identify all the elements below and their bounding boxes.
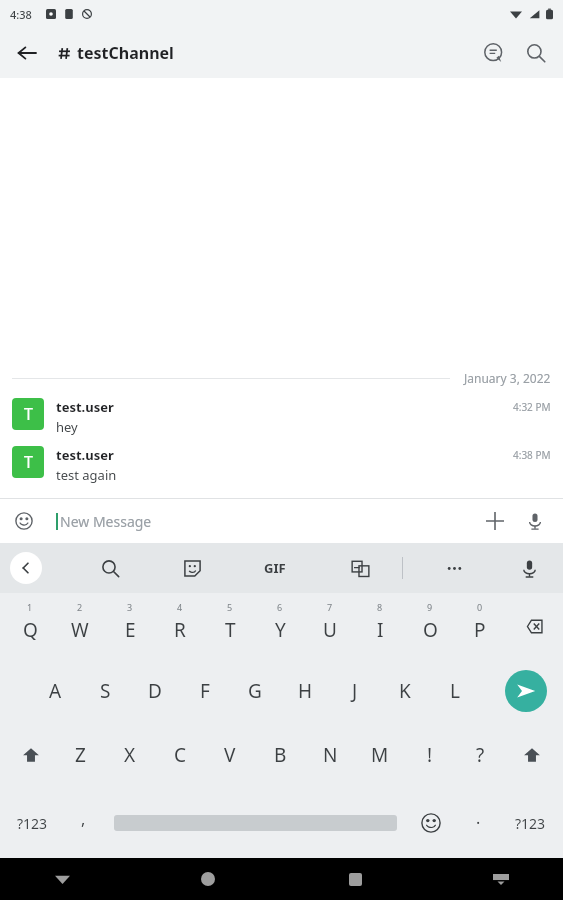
- button[interactable]: ?123: [503, 801, 557, 845]
- button[interactable]: Emoji: [409, 801, 453, 845]
- button[interactable]: 5: [207, 593, 253, 659]
- staticText: U: [323, 617, 337, 643]
- staticText: Z: [75, 742, 86, 768]
- staticText: 4:32 PM: [513, 400, 551, 414]
- staticText: S: [100, 678, 111, 704]
- staticText: 0: [477, 601, 483, 613]
- button[interactable]: ?123: [6, 801, 58, 845]
- button[interactable]: ,: [62, 801, 104, 845]
- button[interactable]: Voice input: [509, 548, 549, 588]
- button[interactable]: [114, 801, 397, 845]
- button[interactable]: 1: [7, 593, 53, 659]
- button[interactable]: Send: [505, 670, 547, 712]
- button[interactable]: A: [32, 659, 78, 723]
- button[interactable]: Back: [6, 32, 48, 74]
- staticText: 3: [127, 601, 133, 613]
- button[interactable]: D: [132, 659, 178, 723]
- button[interactable]: Search GIFs: [90, 548, 130, 588]
- staticText: New Message: [60, 512, 152, 531]
- button[interactable]: 6: [257, 593, 303, 659]
- staticText: T: [24, 451, 33, 473]
- button[interactable]: F: [182, 659, 228, 723]
- staticText: K: [399, 678, 411, 704]
- staticText: testChannel: [77, 42, 174, 64]
- staticText: January 3, 2022: [464, 370, 551, 386]
- staticText: X: [124, 742, 136, 768]
- staticText: N: [323, 742, 338, 768]
- button[interactable]: !: [407, 723, 453, 787]
- button[interactable]: Back: [40, 858, 84, 900]
- button[interactable]: Emoji: [6, 503, 42, 539]
- button[interactable]: Recents: [333, 858, 377, 900]
- button[interactable]: 9: [407, 593, 453, 659]
- button[interactable]: Shift: [509, 732, 555, 778]
- staticText: E: [125, 617, 136, 643]
- button[interactable]: C: [157, 723, 203, 787]
- button[interactable]: M: [357, 723, 403, 787]
- staticText: 9: [427, 601, 433, 613]
- staticText: 8: [377, 601, 383, 613]
- staticText: hey: [56, 418, 78, 436]
- button[interactable]: Voice message: [515, 501, 555, 541]
- button[interactable]: 4: [157, 593, 203, 659]
- staticText: F: [200, 678, 210, 704]
- button[interactable]: Shift: [8, 732, 54, 778]
- button[interactable]: X: [107, 723, 153, 787]
- button[interactable]: Home: [186, 858, 230, 900]
- button[interactable]: 7: [307, 593, 353, 659]
- button[interactable]: Stickers: [172, 548, 212, 588]
- button[interactable]: .: [459, 804, 497, 842]
- button[interactable]: B: [257, 723, 303, 787]
- button[interactable]: Collapse toolbar: [10, 552, 42, 584]
- button[interactable]: ?: [457, 723, 503, 787]
- button[interactable]: 0: [457, 593, 503, 659]
- button[interactable]: 2: [57, 593, 103, 659]
- button[interactable]: K: [382, 659, 428, 723]
- staticText: 4:38 PM: [513, 448, 551, 462]
- staticText: P: [474, 617, 486, 643]
- button[interactable]: H: [282, 659, 328, 723]
- button[interactable]: Search: [515, 32, 557, 74]
- staticText: !: [427, 742, 433, 768]
- button[interactable]: T: [0, 440, 563, 488]
- staticText: D: [148, 678, 162, 704]
- staticText: 5: [227, 601, 233, 613]
- staticText: test.user: [56, 446, 114, 464]
- staticText: ,: [81, 808, 86, 830]
- button[interactable]: G: [232, 659, 278, 723]
- button[interactable]: 3: [107, 593, 153, 659]
- button[interactable]: J: [332, 659, 378, 723]
- staticText: 4:38: [10, 7, 32, 22]
- staticText: B: [274, 742, 287, 768]
- staticText: C: [174, 742, 187, 768]
- staticText: 7: [327, 601, 333, 613]
- staticText: I: [377, 617, 384, 643]
- staticText: Y: [275, 617, 286, 643]
- button[interactable]: Translate: [340, 548, 380, 588]
- button[interactable]: 8: [357, 593, 403, 659]
- staticText: ?123: [17, 814, 48, 833]
- button[interactable]: Backspace: [509, 603, 555, 649]
- button[interactable]: Threads: [473, 32, 515, 74]
- button[interactable]: GIF: [250, 549, 300, 587]
- button[interactable]: T: [0, 392, 563, 440]
- button[interactable]: L: [432, 659, 478, 723]
- staticText: V: [224, 742, 236, 768]
- button[interactable]: More options: [434, 548, 474, 588]
- button[interactable]: Z: [57, 723, 103, 787]
- staticText: 2: [77, 601, 83, 613]
- button[interactable]: V: [207, 723, 253, 787]
- staticText: J: [352, 678, 358, 704]
- button[interactable]: N: [307, 723, 353, 787]
- staticText: A: [49, 678, 62, 704]
- button[interactable]: S: [82, 659, 128, 723]
- staticText: test.user: [56, 398, 114, 416]
- button[interactable]: Add attachment: [475, 501, 515, 541]
- staticText: test again: [56, 466, 117, 484]
- staticText: ?: [476, 742, 485, 768]
- button[interactable]: Hide keyboard: [479, 858, 523, 900]
- staticText: .: [476, 807, 481, 829]
- staticText: T: [225, 617, 236, 643]
- staticText: W: [71, 617, 89, 643]
- staticText: G: [248, 678, 262, 704]
